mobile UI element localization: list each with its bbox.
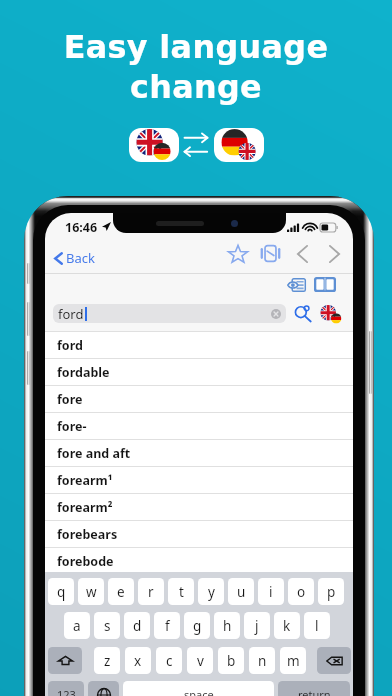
staticText: forebode: [57, 553, 114, 570]
button[interactable]: ford: [45, 331, 353, 358]
staticText: i: [269, 583, 273, 601]
staticText: fore and aft: [57, 445, 131, 462]
button[interactable]: return: [278, 681, 350, 696]
staticText: fore-: [57, 418, 87, 435]
button[interactable]: e: [108, 578, 134, 605]
staticText: r: [148, 583, 154, 601]
staticText: s: [104, 617, 111, 635]
button[interactable]: forearm¹: [45, 466, 353, 493]
staticText: k: [283, 617, 291, 635]
staticText: p: [327, 583, 336, 601]
staticText: ford: [58, 305, 84, 323]
staticText: h: [223, 617, 232, 635]
button[interactable]: y: [198, 578, 224, 605]
button[interactable]: Back: [54, 249, 95, 267]
button[interactable]: German to English: [214, 128, 264, 162]
button[interactable]: u: [228, 578, 254, 605]
button[interactable]: fore-: [45, 412, 353, 439]
button[interactable]: fore and aft: [45, 439, 353, 466]
staticText: l: [315, 617, 319, 635]
staticText: forearm²: [57, 499, 113, 516]
button[interactable]: s: [94, 612, 120, 639]
button[interactable]: forebode: [45, 547, 353, 574]
button[interactable]: k: [274, 612, 300, 639]
staticText: e: [117, 583, 125, 601]
button[interactable]: v: [187, 647, 213, 674]
staticText: fordable: [57, 364, 110, 381]
button[interactable]: fore: [45, 385, 353, 412]
button[interactable]: h: [214, 612, 240, 639]
button[interactable]: q: [48, 578, 74, 605]
button[interactable]: Backspace: [317, 647, 351, 674]
staticText: n: [258, 652, 267, 670]
button[interactable]: space: [123, 681, 274, 696]
button[interactable]: g: [184, 612, 210, 639]
button[interactable]: Shift: [48, 647, 82, 674]
staticText: u: [237, 583, 246, 601]
button[interactable]: Flashcards: [257, 244, 283, 263]
button[interactable]: Emoji keyboard: [88, 681, 119, 696]
staticText: f: [165, 617, 170, 635]
staticText: forearm¹: [57, 472, 113, 489]
staticText: w: [86, 583, 97, 601]
staticText: q: [57, 583, 66, 601]
staticText: Back: [66, 249, 95, 267]
staticText: space: [184, 687, 214, 696]
button[interactable]: Definition: [284, 274, 308, 295]
button[interactable]: z: [94, 647, 120, 674]
staticText: b: [227, 652, 236, 670]
staticText: o: [297, 583, 306, 601]
button[interactable]: x: [125, 647, 151, 674]
button[interactable]: English to German: [129, 128, 179, 162]
button[interactable]: Favourite: [225, 244, 251, 263]
staticText: v: [197, 652, 204, 670]
staticText: 16:46: [65, 219, 98, 236]
staticText: y: [208, 583, 215, 601]
staticText: x: [134, 652, 142, 670]
staticText: ford: [57, 337, 83, 354]
button[interactable]: Change language: [319, 304, 343, 325]
button[interactable]: r: [138, 578, 164, 605]
button[interactable]: c: [156, 647, 182, 674]
button[interactable]: i: [258, 578, 284, 605]
staticText: z: [104, 652, 111, 670]
staticText: c: [166, 652, 173, 670]
button[interactable]: p: [318, 578, 344, 605]
button[interactable]: forebears: [45, 520, 353, 547]
button[interactable]: j: [244, 612, 270, 639]
staticText: m: [287, 652, 300, 670]
staticText: j: [255, 617, 259, 635]
button[interactable]: b: [218, 647, 244, 674]
button[interactable]: forearm²: [45, 493, 353, 520]
staticText: t: [179, 583, 184, 601]
button[interactable]: ford: [53, 304, 286, 323]
button[interactable]: 123: [48, 681, 84, 696]
staticText: g: [193, 617, 202, 635]
button[interactable]: n: [249, 647, 275, 674]
button[interactable]: o: [288, 578, 314, 605]
button[interactable]: fordable: [45, 358, 353, 385]
button[interactable]: l: [304, 612, 330, 639]
button[interactable]: w: [78, 578, 104, 605]
staticText: Easy language change: [0, 28, 392, 106]
staticText: fore: [57, 391, 83, 408]
button[interactable]: a: [64, 612, 90, 639]
staticText: a: [73, 617, 81, 635]
staticText: 123: [57, 687, 76, 696]
button[interactable]: d: [124, 612, 150, 639]
button[interactable]: Dictionary: [312, 274, 338, 295]
button[interactable]: m: [280, 647, 306, 674]
button[interactable]: t: [168, 578, 194, 605]
button[interactable]: f: [154, 612, 180, 639]
button[interactable]: Next: [323, 244, 345, 263]
button[interactable]: Fuzzy search: [291, 304, 315, 323]
staticText: d: [133, 617, 142, 635]
button[interactable]: Previous: [291, 244, 313, 263]
staticText: forebears: [57, 526, 118, 543]
staticText: return: [298, 687, 331, 696]
